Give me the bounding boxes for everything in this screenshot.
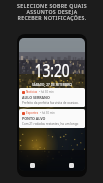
button[interactable]: Noticias	[19, 88, 85, 107]
button[interactable]: Camera	[30, 163, 35, 168]
staticText: Esportes	[26, 111, 39, 115]
staticText: SELECIONE SOBRE QUAIS ASSUNTOS DESEJA RE…	[17, 2, 87, 21]
staticText: SÁBADO, 27 DE SETEMBRO	[32, 83, 73, 87]
staticText: Prefeito da prefeita faz visita de ocasi…	[22, 101, 79, 105]
staticText: Com 21 rodadas restantes, ha um longo ca…	[22, 122, 82, 126]
staticText: • há 30 min	[39, 90, 54, 94]
staticText: AULO SERRANO	[22, 95, 50, 100]
button[interactable]: Phone	[69, 163, 74, 168]
staticText: 13:20	[35, 58, 70, 83]
button[interactable]: Esportes	[19, 109, 85, 128]
staticText: • há 30 min	[40, 111, 55, 115]
staticText: PONTO ALVO	[22, 116, 46, 121]
staticText: Noticias	[26, 90, 38, 94]
